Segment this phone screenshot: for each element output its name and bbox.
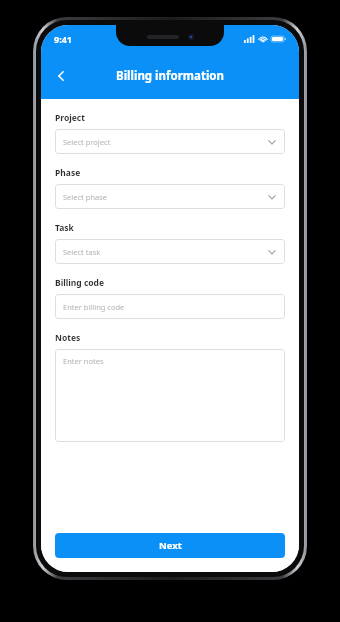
button[interactable]: Next <box>55 533 285 558</box>
staticText: 9:41 <box>54 33 72 45</box>
staticText: Select task <box>63 247 101 257</box>
button[interactable]: Select task <box>55 239 285 264</box>
staticText: Next <box>159 539 182 552</box>
button[interactable]: Enter billing code <box>55 294 285 319</box>
button[interactable]: Select project <box>55 129 285 154</box>
staticText: Project <box>55 112 85 124</box>
button[interactable]: Back <box>47 61 77 91</box>
staticText: Phase <box>55 167 81 179</box>
staticText: Enter notes <box>63 356 104 366</box>
button[interactable]: Select phase <box>55 184 285 209</box>
staticText: Notes <box>55 332 81 344</box>
staticText: Billing code <box>55 277 105 289</box>
staticText: Select phase <box>63 192 108 202</box>
staticText: Select project <box>63 137 111 147</box>
staticText: Enter billing code <box>63 302 125 312</box>
staticText: Billing information <box>116 68 224 84</box>
staticText: Task <box>55 222 74 234</box>
button[interactable]: Enter notes <box>55 349 285 442</box>
